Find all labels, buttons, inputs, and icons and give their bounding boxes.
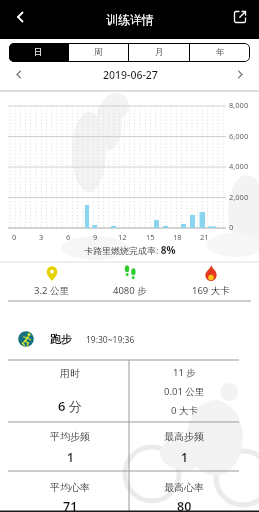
staticText: 71 xyxy=(63,498,78,512)
staticText: 周 xyxy=(94,47,103,58)
staticText: 6 分 xyxy=(58,397,82,415)
staticText: 11 步 xyxy=(173,366,196,379)
button[interactable]: 月 xyxy=(129,43,189,62)
staticText: 8,000 xyxy=(229,100,249,110)
staticText: 0.01 公里 xyxy=(164,385,205,398)
staticText: 平均步频 xyxy=(50,430,90,443)
staticText: 2019-06-27 xyxy=(103,68,158,82)
staticText: 6,000 xyxy=(229,131,249,141)
staticText: 80 xyxy=(177,498,192,512)
staticText: 21 xyxy=(200,232,209,242)
staticText: 9 xyxy=(93,232,98,242)
staticText: 日 xyxy=(34,47,43,58)
button[interactable]: 年 xyxy=(190,43,250,62)
button[interactable] xyxy=(229,64,251,86)
staticText: 1 xyxy=(67,449,74,465)
button[interactable] xyxy=(12,326,162,352)
staticText: 19:30~19:36 xyxy=(86,334,135,346)
staticText: 15 xyxy=(146,232,155,242)
staticText: 训练详情 xyxy=(106,12,154,27)
staticText: 6 xyxy=(66,232,71,242)
staticText: 用时 xyxy=(60,367,80,380)
button[interactable] xyxy=(171,263,251,299)
staticText: 0 大卡 xyxy=(171,404,198,417)
staticText: 169 大卡 xyxy=(192,284,230,297)
staticText: 最高步频 xyxy=(164,430,204,443)
staticText: 卡路里燃烧完成率: 8% xyxy=(84,243,176,257)
staticText: 平均心率 xyxy=(50,481,90,494)
button[interactable]: 日 xyxy=(9,43,68,62)
staticText: 4,000 xyxy=(229,161,249,171)
staticText: 年 xyxy=(216,47,225,58)
button[interactable] xyxy=(8,5,32,29)
staticText: 最高心率 xyxy=(164,481,204,494)
staticText: 4080 步 xyxy=(113,284,147,297)
button[interactable] xyxy=(11,263,91,299)
button[interactable] xyxy=(8,64,30,86)
staticText: 月 xyxy=(155,47,164,58)
staticText: 0 xyxy=(229,222,234,232)
staticText: 3 xyxy=(39,232,44,242)
staticText: 18 xyxy=(173,232,182,242)
staticText: 跑步 xyxy=(50,332,72,346)
staticText: 0 xyxy=(12,232,17,242)
staticText: 2,000 xyxy=(229,192,249,202)
button[interactable] xyxy=(91,263,171,299)
staticText: 1 xyxy=(181,449,188,465)
staticText: 12 xyxy=(118,232,127,242)
staticText: 3.2 公里 xyxy=(34,284,69,297)
button[interactable] xyxy=(225,4,251,30)
button[interactable]: 周 xyxy=(69,43,128,62)
